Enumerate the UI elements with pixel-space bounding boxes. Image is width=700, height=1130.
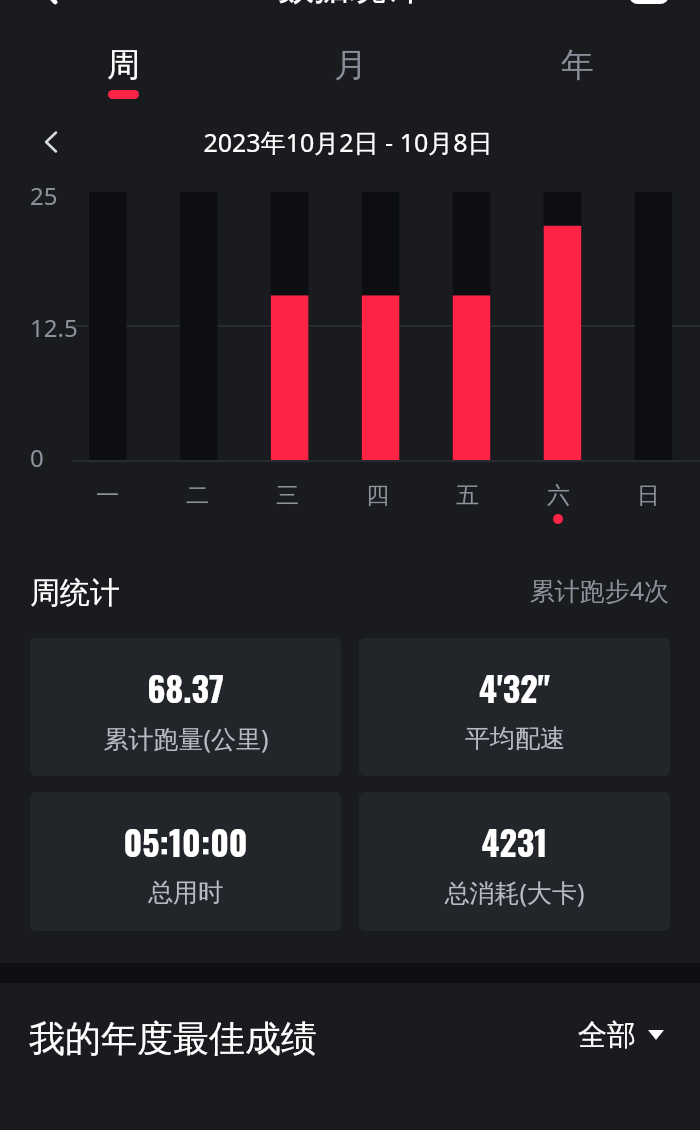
button[interactable]: Previous period: [27, 121, 69, 163]
staticText: 三: [276, 481, 299, 510]
staticText: 2023年10月2日 - 10月8日: [203, 125, 493, 159]
staticText: 周: [107, 44, 140, 86]
button[interactable]: 4'32": [359, 638, 670, 776]
staticText: 总消耗(大卡): [444, 875, 585, 909]
button[interactable]: 月: [280, 30, 420, 114]
staticText: 周统计: [30, 574, 120, 612]
staticText: 平均配速: [465, 723, 565, 754]
staticText: 全部: [578, 1017, 636, 1054]
staticText: 累计跑步4次: [400, 573, 669, 607]
staticText: 0: [30, 441, 44, 474]
button[interactable]: 周: [53, 30, 193, 114]
staticText: 12.5: [30, 311, 78, 344]
button[interactable]: Share: [630, 0, 668, 2]
staticText: 一: [96, 481, 119, 510]
staticText: 六: [547, 481, 570, 510]
staticText: 4231: [359, 816, 670, 866]
button[interactable]: 68.37: [30, 638, 341, 776]
staticText: 二: [186, 481, 209, 510]
staticText: 日: [637, 481, 660, 510]
button[interactable]: 年: [507, 30, 647, 114]
staticText: 05:10:00: [30, 816, 341, 866]
staticText: 68.37: [30, 662, 341, 712]
staticText: 累计跑量(公里): [103, 721, 269, 755]
staticText: 我的年度最佳成绩: [29, 1016, 317, 1061]
staticText: 25: [30, 179, 58, 212]
staticText: 4'32": [359, 662, 670, 712]
button[interactable]: 全部: [578, 1013, 673, 1057]
staticText: 总用时: [148, 877, 223, 908]
button[interactable]: 4231: [359, 792, 670, 931]
staticText: 月: [334, 44, 367, 86]
staticText: 数据统计: [278, 0, 422, 9]
button[interactable]: 05:10:00: [30, 792, 341, 931]
staticText: 五: [456, 481, 479, 510]
button[interactable]: Back: [30, 0, 66, 5]
staticText: 年: [561, 44, 594, 86]
staticText: 四: [366, 481, 389, 510]
